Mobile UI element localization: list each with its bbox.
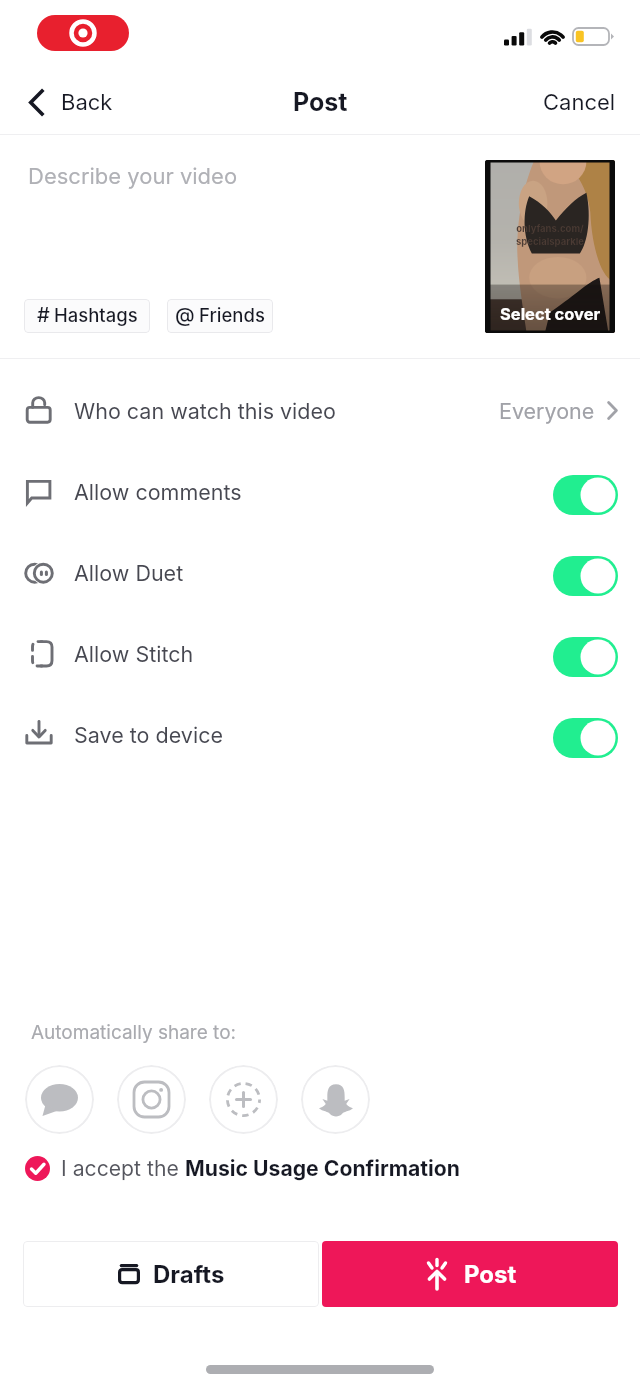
button[interactable]: Recording: [37, 15, 129, 51]
staticText: Post: [293, 87, 348, 117]
button[interactable]: Save to device: [0, 694, 640, 775]
staticText: Allow comments: [74, 479, 242, 505]
button[interactable]: Drafts: [23, 1241, 319, 1307]
button[interactable]: Allow comments: [0, 451, 640, 532]
button[interactable]: Select cover: [485, 160, 615, 333]
staticText: Describe your video: [28, 163, 238, 190]
button[interactable]: @: [167, 299, 273, 333]
staticText: @: [175, 303, 195, 327]
staticText: Post: [464, 1260, 517, 1289]
button[interactable]: Allow Stitch toggle: [553, 637, 618, 677]
button[interactable]: Allow comments toggle: [553, 475, 618, 515]
button[interactable]: Message: [25, 1065, 94, 1134]
button[interactable]: Allow Stitch: [0, 613, 640, 694]
staticText: Select cover: [500, 304, 601, 324]
button[interactable]: Allow Duet: [0, 532, 640, 613]
staticText: Cancel: [543, 89, 616, 116]
button[interactable]: Who can watch this video: [0, 370, 640, 451]
staticText: Music Usage Confirmation: [185, 1155, 461, 1181]
staticText: #: [37, 303, 50, 327]
staticText: Drafts: [153, 1260, 225, 1289]
staticText: Allow Stitch: [74, 641, 194, 667]
staticText: Back: [61, 89, 113, 116]
button[interactable]: Back: [0, 67, 129, 137]
staticText: Allow Duet: [74, 560, 184, 586]
button[interactable]: Instagram Story: [209, 1065, 278, 1134]
button[interactable]: I accept the: [0, 1147, 640, 1189]
staticText: Friends: [199, 304, 265, 326]
staticText: I accept the: [61, 1155, 185, 1181]
staticText: onlyfans.com/ specialsparkle: [485, 223, 615, 248]
button[interactable]: Instagram: [117, 1065, 186, 1134]
staticText: Who can watch this video: [74, 398, 336, 424]
staticText: Save to device: [74, 722, 223, 748]
button[interactable]: Post: [322, 1241, 618, 1307]
button[interactable]: Cancel: [519, 67, 640, 137]
staticText: Everyone: [499, 398, 595, 424]
button[interactable]: Snapchat: [301, 1065, 370, 1134]
staticText: Automatically share to:: [31, 1021, 237, 1044]
button[interactable]: #: [24, 299, 150, 333]
staticText: Hashtags: [54, 304, 138, 326]
button[interactable]: Allow Duet toggle: [553, 556, 618, 596]
button[interactable]: Save to device toggle: [553, 718, 618, 758]
